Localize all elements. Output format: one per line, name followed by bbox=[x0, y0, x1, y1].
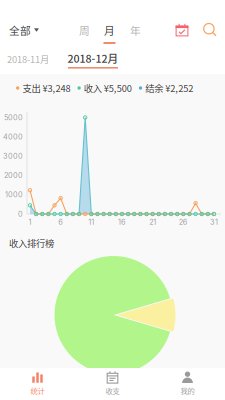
staticText: 5000 bbox=[4, 113, 23, 122]
staticText: 收入排行榜 bbox=[9, 236, 54, 250]
staticText: 1000 bbox=[5, 190, 23, 199]
staticText: 0 bbox=[18, 210, 23, 218]
staticText: 月 bbox=[104, 22, 115, 38]
staticText: 4000 bbox=[3, 132, 23, 141]
staticText: 周 bbox=[79, 22, 90, 38]
staticText: 1 bbox=[28, 218, 31, 226]
staticText: 11 bbox=[88, 218, 94, 226]
button[interactable]: 日历 bbox=[169, 17, 195, 43]
staticText: 收支 bbox=[105, 385, 119, 396]
button[interactable]: 周 bbox=[73, 15, 95, 45]
staticText: 我的 bbox=[180, 385, 194, 396]
button[interactable]: 2018-11月 bbox=[3, 46, 53, 72]
staticText: 26 bbox=[179, 218, 188, 226]
staticText: 统计 bbox=[30, 385, 44, 396]
staticText: 21 bbox=[149, 218, 156, 226]
staticText: 全部 bbox=[9, 22, 31, 38]
staticText: 6 bbox=[58, 218, 63, 226]
staticText: 2018-12月 bbox=[67, 50, 118, 66]
staticText: 结余 ¥2,252 bbox=[145, 81, 193, 95]
staticText: 31 bbox=[210, 218, 218, 226]
button[interactable]: 我的 bbox=[150, 368, 225, 400]
button[interactable]: 2018-12月 bbox=[63, 46, 123, 72]
button[interactable]: 年 bbox=[124, 15, 146, 45]
staticText: 3000 bbox=[3, 152, 23, 161]
staticText: 2018-11月 bbox=[7, 52, 49, 66]
button[interactable]: 收支 bbox=[75, 368, 150, 400]
staticText: 年 bbox=[130, 22, 141, 38]
button[interactable]: 统计 bbox=[0, 368, 75, 400]
staticText: 2000 bbox=[4, 171, 23, 180]
button[interactable]: 搜索 bbox=[197, 17, 223, 43]
staticText: 收入 ¥5,500 bbox=[84, 81, 132, 95]
button[interactable]: 月 bbox=[98, 15, 120, 45]
staticText: 16 bbox=[118, 218, 126, 226]
button[interactable]: 全部 bbox=[1, 15, 47, 45]
staticText: 支出 ¥3,248 bbox=[22, 81, 70, 95]
